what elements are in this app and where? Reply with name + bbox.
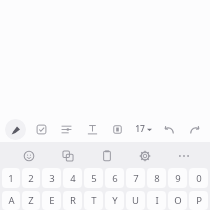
staticText: T [91,194,97,207]
staticText: P [196,194,202,207]
button[interactable]: 1 [2,168,20,188]
button[interactable]: 3 [42,168,61,188]
staticText: 5 [91,172,97,185]
staticText: 17 [135,123,145,135]
button[interactable]: 7 [126,168,145,188]
button[interactable]: 0 [189,168,208,188]
button[interactable]: I [147,191,166,210]
button[interactable]: Y [105,191,124,210]
button[interactable]: Redo [184,119,205,140]
button[interactable]: E [42,191,61,210]
button[interactable]: 5 [84,168,103,188]
staticText: 6 [112,172,118,185]
button[interactable]: O [168,191,187,210]
button[interactable]: 2 [22,168,40,188]
staticText: O [174,194,182,207]
button[interactable]: More options [173,145,194,166]
button[interactable]: T [84,191,103,210]
staticText: 3 [49,172,55,185]
staticText: I [155,194,159,207]
button[interactable]: Paragraph alignment [56,119,77,140]
staticText: 7 [133,172,139,185]
button[interactable]: A [2,191,20,210]
button[interactable]: Clipboard [96,145,117,166]
button[interactable]: Text style [5,119,26,140]
button[interactable]: 8 [147,168,166,188]
button[interactable]: 4 [63,168,82,188]
staticText: 4 [70,172,76,185]
staticText: 8 [154,172,160,185]
button[interactable]: 9 [168,168,187,188]
button[interactable]: Keyboard settings [134,145,155,166]
staticText: E [49,194,55,207]
button[interactable]: Checklist [31,119,52,140]
button[interactable]: Z [22,191,40,210]
button[interactable]: Stickers [57,145,78,166]
button[interactable]: R [63,191,82,210]
staticText: 1 [8,172,14,185]
staticText: 9 [175,172,181,185]
button[interactable]: Undo [158,119,179,140]
button[interactable]: Text formatting [82,119,103,140]
button[interactable]: Emoji [18,145,39,166]
button[interactable]: U [126,191,145,210]
staticText: 2 [28,172,34,185]
staticText: 0 [196,172,202,185]
staticText: Y [112,194,118,207]
staticText: A [8,194,15,207]
button[interactable]: P [189,191,208,210]
staticText: R [70,194,76,207]
button[interactable]: 6 [105,168,124,188]
staticText: U [132,194,139,207]
staticText: Z [28,194,34,207]
button[interactable]: 17 [133,123,154,135]
button[interactable]: Insert object [107,119,128,140]
